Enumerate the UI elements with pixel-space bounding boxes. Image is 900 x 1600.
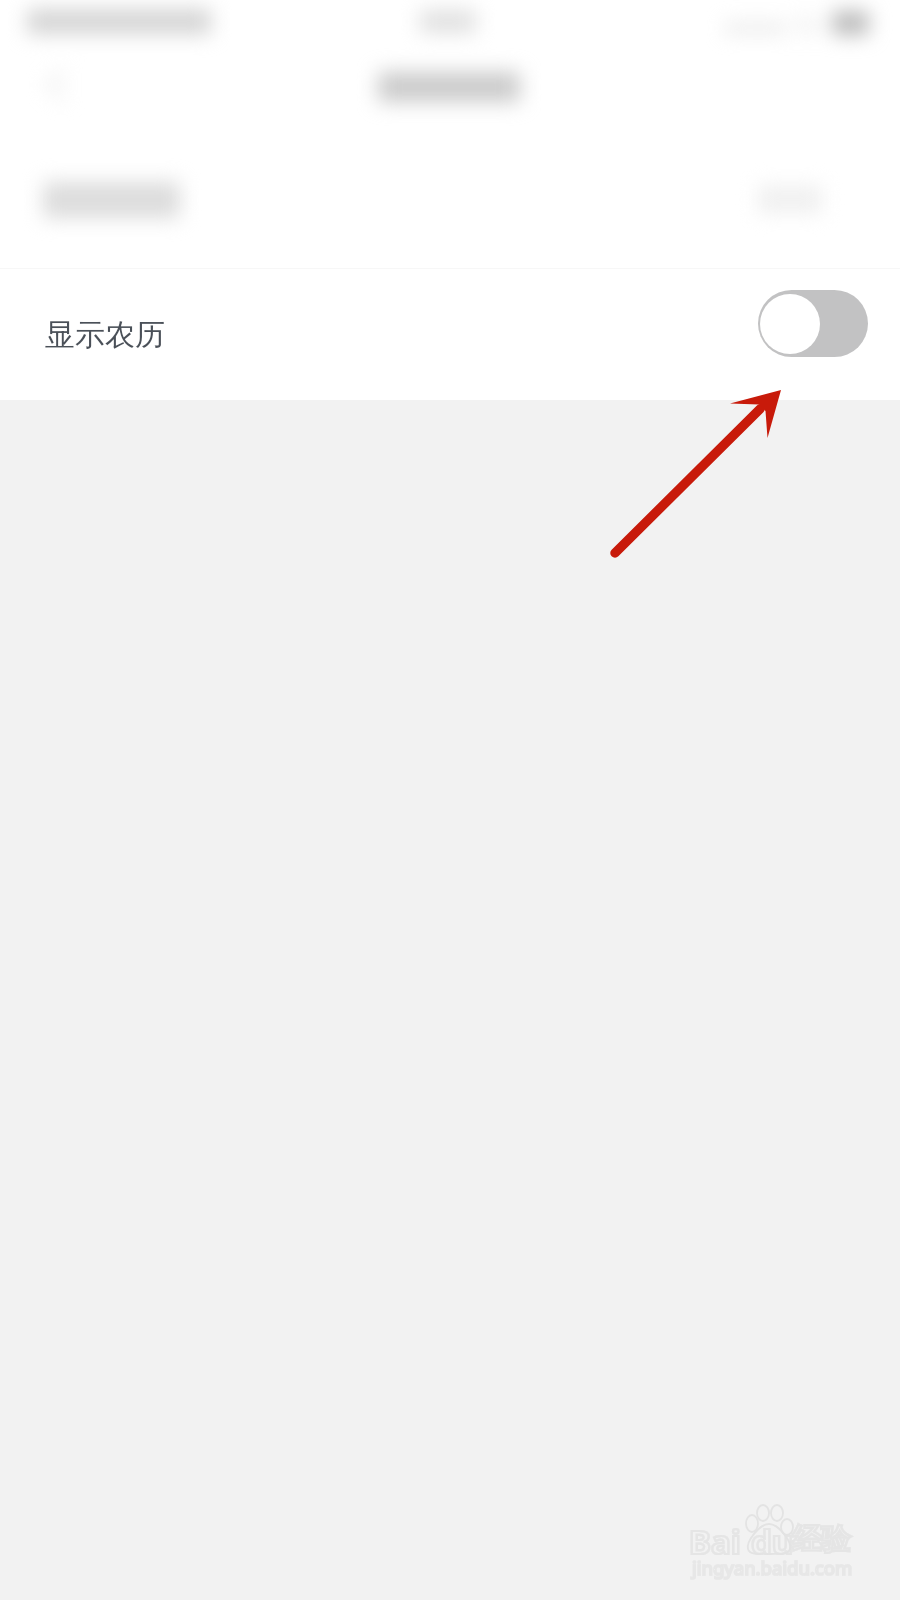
staticText: du [751,1519,794,1564]
button[interactable]: 显示农历 switch [758,290,868,357]
staticText: jingyan.baidu.com [692,1555,853,1580]
button[interactable]: 显示农历 [0,269,900,400]
staticText: 显示农历 [45,316,165,354]
staticText: 经验 [792,1521,850,1558]
staticText: Bai [689,1519,741,1564]
